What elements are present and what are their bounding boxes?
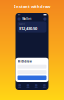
staticText: $12,430.50 [19,26,37,31]
staticText: Withdraw [17,60,31,63]
staticText: 9:41 [17,14,20,16]
staticText: Instant withdraw [14,4,50,9]
button[interactable]: Tab [32,84,40,88]
button[interactable]: Tab [15,84,24,88]
button[interactable]: Tab [24,84,32,88]
staticText: Balance [19,23,25,25]
button[interactable]: Tab [40,84,48,88]
staticText: Wallet [22,17,31,21]
